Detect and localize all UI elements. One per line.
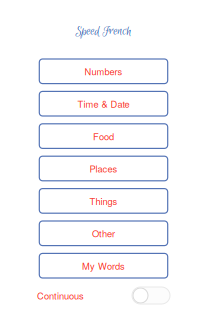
staticText: Places — [89, 162, 117, 175]
button[interactable]: Continuous toggle, off — [132, 287, 170, 304]
staticText: My Words — [82, 259, 125, 272]
staticText: Speed French — [75, 24, 131, 39]
button[interactable]: My Words — [39, 253, 168, 278]
staticText: Numbers — [84, 65, 122, 78]
staticText: Things — [89, 194, 117, 208]
button[interactable]: Food — [39, 124, 168, 148]
staticText: Other — [92, 227, 115, 240]
button[interactable]: Numbers — [39, 59, 168, 84]
button[interactable]: Time & Date — [39, 91, 168, 116]
button[interactable]: Other — [39, 221, 168, 246]
button[interactable]: Things — [39, 189, 168, 213]
button[interactable]: Places — [39, 156, 168, 181]
staticText: Food — [93, 129, 114, 143]
staticText: Time & Date — [77, 97, 129, 110]
staticText: Continuous — [37, 289, 84, 302]
